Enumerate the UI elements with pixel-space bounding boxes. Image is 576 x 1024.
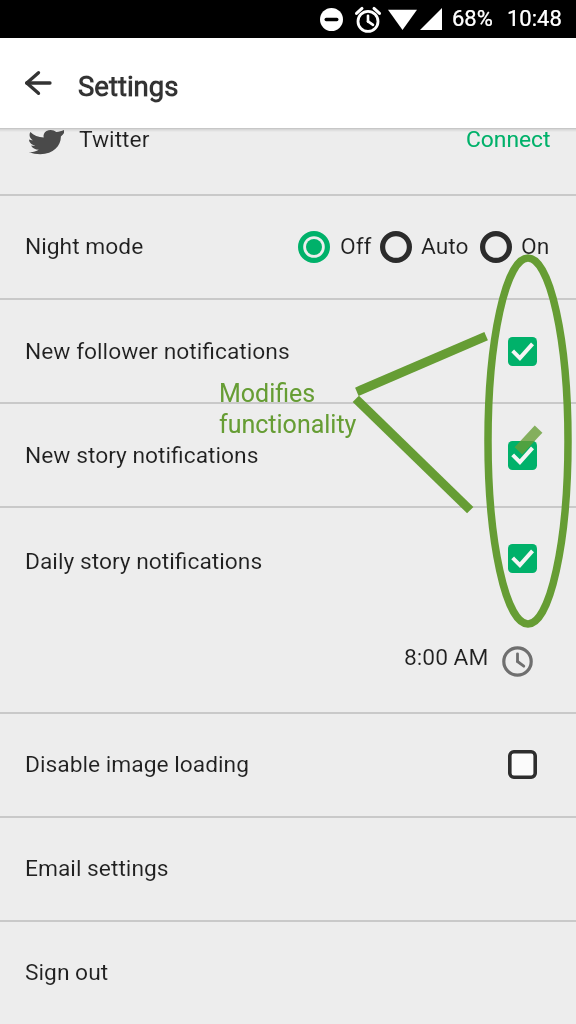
staticText: Twitter bbox=[79, 126, 150, 153]
button[interactable]: Twitter bbox=[0, 126, 576, 194]
staticText: 8:00 AM bbox=[404, 644, 489, 671]
staticText: Night mode bbox=[25, 233, 144, 260]
staticText: New follower notifications bbox=[25, 338, 290, 365]
staticText: Email settings bbox=[25, 855, 169, 882]
staticText: 68% bbox=[452, 6, 493, 32]
button[interactable]: Set time bbox=[502, 646, 533, 677]
button[interactable]: Back bbox=[13, 59, 61, 107]
button[interactable]: Daily story notifications bbox=[0, 507, 576, 713]
staticText: 10:48 bbox=[507, 6, 562, 32]
button[interactable] bbox=[476, 219, 563, 275]
staticText: Auto bbox=[421, 233, 469, 260]
button[interactable]: Email settings bbox=[0, 817, 576, 920]
staticText: Sign out bbox=[25, 959, 109, 986]
button[interactable]: New follower notifications bbox=[0, 299, 576, 403]
button[interactable]: Sign out bbox=[0, 921, 576, 1024]
staticText: Daily story notifications bbox=[25, 548, 263, 575]
staticText: New story notifications bbox=[25, 442, 259, 469]
staticText: Connect bbox=[466, 126, 551, 153]
button[interactable]: Disable image loading bbox=[0, 713, 576, 816]
staticText: Settings bbox=[78, 70, 179, 102]
button[interactable]: New story notifications bbox=[0, 403, 576, 507]
staticText: Modifies bbox=[219, 379, 316, 408]
button[interactable] bbox=[294, 219, 382, 275]
staticText: On bbox=[521, 233, 550, 260]
button[interactable] bbox=[376, 219, 463, 275]
staticText: functionality bbox=[219, 410, 357, 439]
staticText: Disable image loading bbox=[25, 751, 249, 778]
staticText: Off bbox=[340, 233, 372, 260]
